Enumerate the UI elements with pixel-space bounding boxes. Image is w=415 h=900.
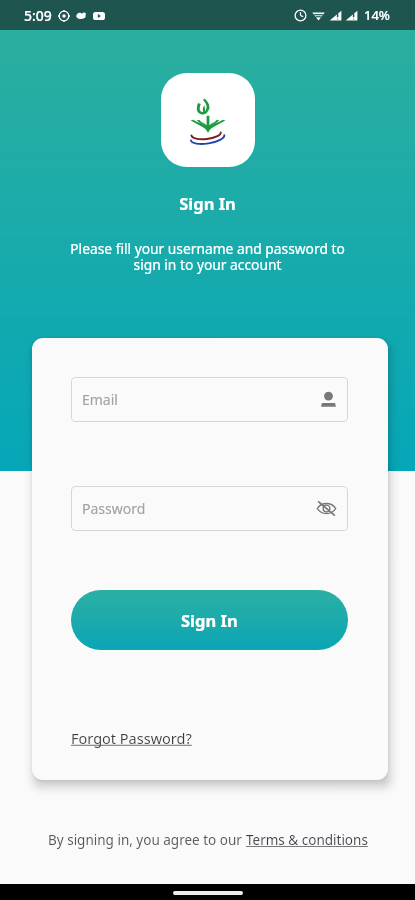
button[interactable]: Forgot Password? [71, 728, 192, 748]
staticText: Sign In [0, 192, 415, 214]
staticText: Sign In [181, 609, 238, 631]
button[interactable]: Email [71, 377, 348, 422]
other: Show password [316, 498, 337, 519]
staticText: Please fill your username and password t… [0, 239, 415, 274]
button[interactable]: Terms & conditions [246, 831, 368, 849]
button[interactable]: Password [71, 486, 348, 531]
staticText: 5:09 [24, 6, 52, 25]
staticText: Password [82, 499, 316, 518]
staticText: Forgot Password? [71, 728, 192, 748]
button[interactable]: Sign In [71, 590, 348, 650]
other: Account [320, 391, 337, 408]
staticText: Email [82, 390, 320, 409]
staticText: By signing in, you agree to our [48, 831, 246, 849]
staticText: 14% [364, 6, 390, 24]
